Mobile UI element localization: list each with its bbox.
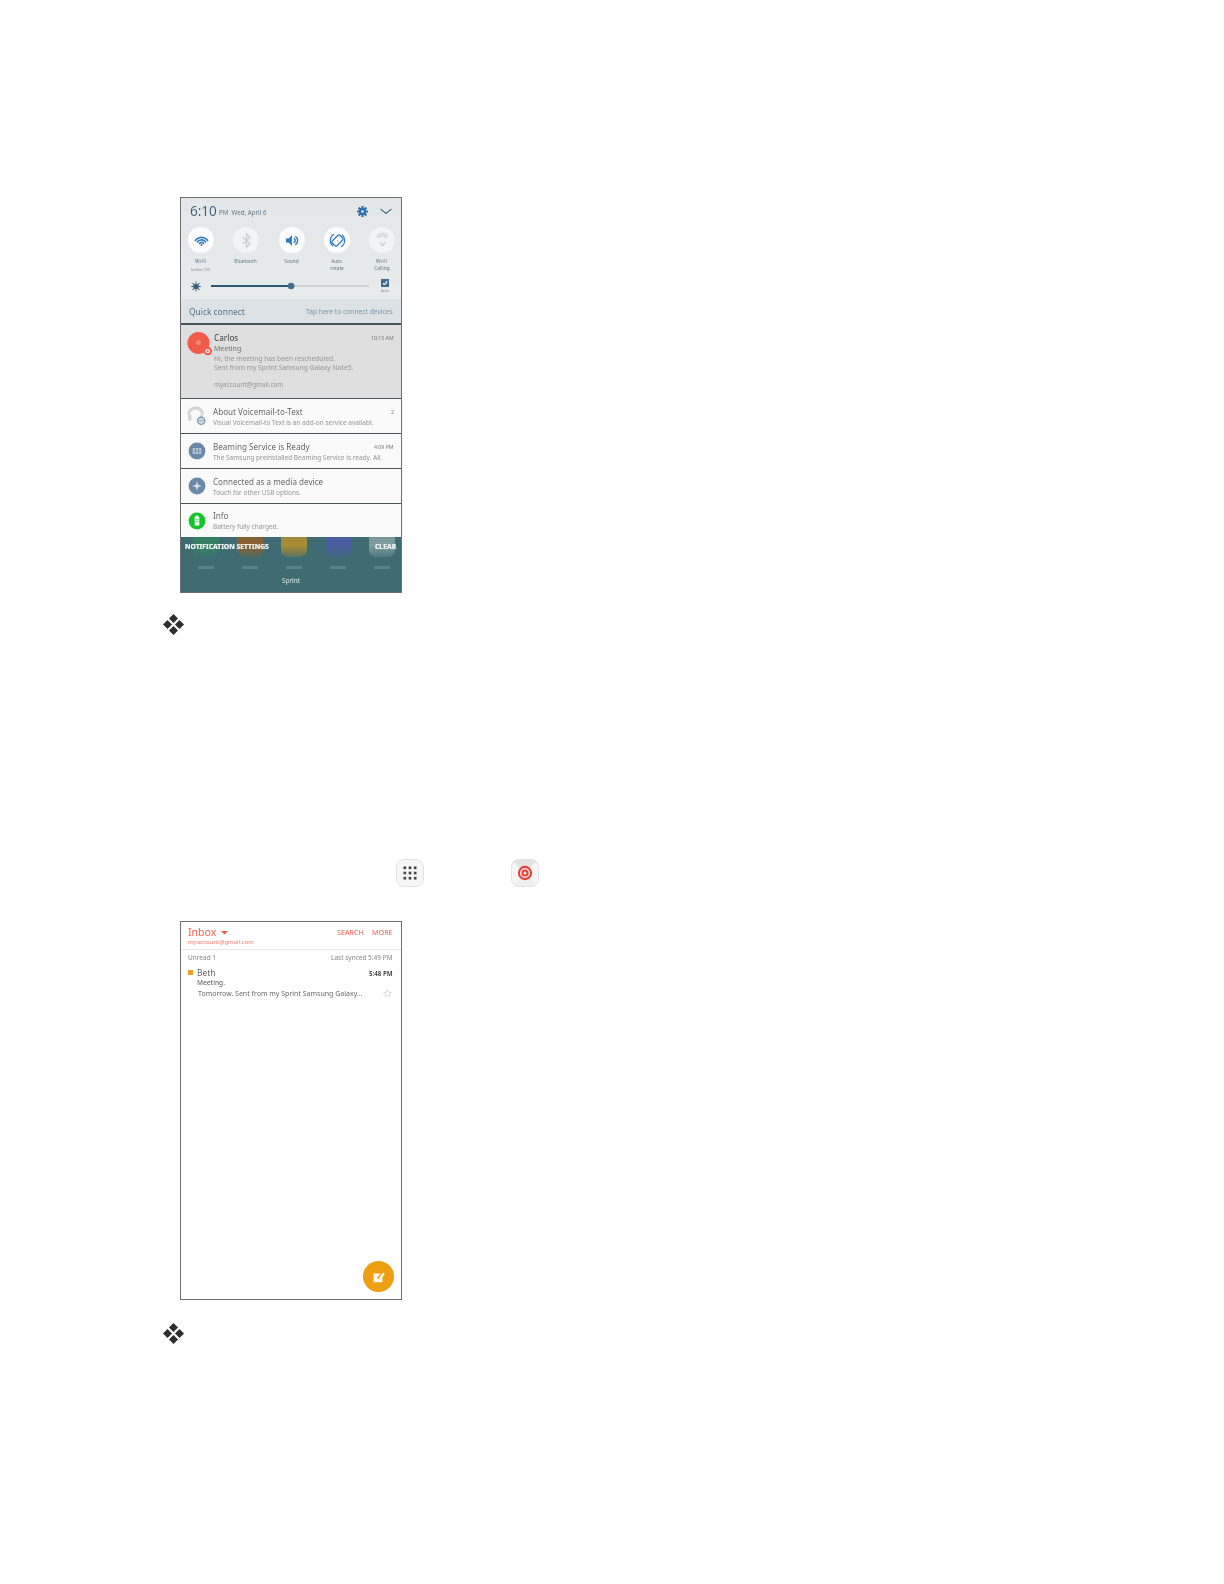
button[interactable]: Email (511, 859, 539, 887)
button[interactable]: CLEAR (375, 542, 397, 551)
button[interactable]: NOTIFICATION SETTINGS (185, 542, 269, 551)
button[interactable]: Auto (317, 227, 356, 272)
staticText: Wi-Fi (376, 258, 387, 265)
staticText: The Samsung preinstalled Beaming Service… (213, 453, 383, 462)
staticText: PM Wed, April 6 (219, 208, 267, 216)
button[interactable]: Beth (181, 964, 401, 999)
button[interactable]: Auto brightness (375, 279, 395, 293)
staticText: Inbox (188, 925, 217, 939)
staticText: Unread 1 (188, 953, 217, 962)
button[interactable]: Info (181, 504, 401, 537)
button[interactable]: Settings (354, 203, 370, 219)
staticText: Tomorrow. Sent from my Sprint Samsung Ga… (198, 989, 379, 999)
staticText: 4:09 PM (374, 443, 394, 450)
staticText: Battery fully charged. (213, 522, 279, 531)
staticText: Meeting (214, 344, 242, 354)
staticText: Sent from my Sprint Samsung Galaxy Note5… (214, 363, 354, 372)
staticText: myaccount@gmail.com (188, 938, 254, 946)
staticText: Calling (374, 265, 390, 272)
staticText: Info (213, 510, 229, 521)
staticText: Sound (284, 258, 299, 265)
staticText: myaccount@gmail.com (214, 380, 284, 389)
button[interactable]: Sound (272, 227, 311, 265)
staticText: CLEAR (375, 542, 397, 551)
staticText: Visual Voicemail-to Text is an add-on se… (213, 418, 374, 427)
button[interactable]: Star message (382, 988, 393, 999)
button[interactable]: Connected as a media device (181, 469, 401, 503)
staticText: 2 (391, 408, 394, 415)
button[interactable]: About Voicemail-to-Text (181, 399, 401, 433)
staticText: About Voicemail-to-Text (213, 406, 303, 417)
staticText: Meeting. (197, 978, 225, 987)
button[interactable]: Wi-Fi (362, 227, 401, 272)
staticText: MORE (372, 927, 393, 937)
staticText: Touch for other USB options. (213, 488, 301, 497)
button[interactable]: Inbox (188, 925, 228, 939)
button[interactable]: Compose (363, 1261, 394, 1292)
staticText: belkin.199 (191, 267, 210, 272)
staticText: Wi-Fi (195, 258, 206, 265)
staticText: NOTIFICATION SETTINGS (185, 542, 269, 551)
button[interactable]: SEARCH (337, 927, 364, 937)
button[interactable]: Quick connect (181, 299, 401, 323)
button[interactable]: Carlos (181, 325, 401, 398)
staticText: Sprint (282, 576, 300, 585)
staticText: Connected as a media device (213, 476, 324, 487)
staticText: Auto (331, 258, 342, 265)
staticText: 6:10 (190, 202, 217, 220)
button[interactable]: Collapse (378, 203, 394, 219)
button[interactable]: Apps (396, 859, 424, 887)
staticText: 5:48 PM (369, 969, 393, 977)
button[interactable]: Beaming Service is Ready (181, 434, 401, 468)
staticText: Beth (197, 967, 216, 978)
staticText: Last synced 5:49 PM (331, 953, 393, 962)
staticText: Hi, the meeting has been rescheduled. (214, 354, 335, 363)
staticText: Auto (381, 288, 389, 293)
staticText: SEARCH (337, 927, 364, 937)
staticText: 10:15 AM (371, 334, 394, 341)
button[interactable]: Wi-Fi (181, 227, 220, 272)
staticText: Quick connect (189, 306, 245, 317)
staticText: Carlos (214, 332, 239, 343)
button[interactable]: MORE (372, 927, 393, 937)
button[interactable]: Bluetooth (226, 227, 265, 265)
staticText: Tap here to connect devices (306, 307, 393, 316)
staticText: Beaming Service is Ready (213, 441, 310, 452)
staticText: rotate (330, 265, 344, 272)
staticText: Bluetooth (234, 258, 257, 265)
